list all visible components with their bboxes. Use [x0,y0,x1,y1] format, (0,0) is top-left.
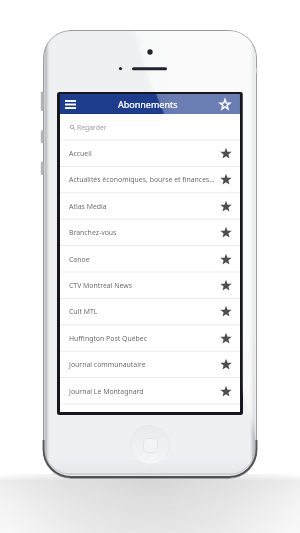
button[interactable]: Actualités économiques, bourse et financ… [60,166,240,192]
staticText: Atlas Media [69,202,216,211]
staticText: Abonnements [118,98,178,110]
staticText: CTV Montreal News [69,281,216,290]
staticText: Regarder [77,123,107,132]
button[interactable]: Accueil [60,140,240,166]
button[interactable]: Canoe [60,246,240,272]
staticText: Journal communautaire [69,360,216,369]
button[interactable]: Regarder [60,114,240,140]
button[interactable]: Atlas Media [60,193,240,219]
staticText: Huffington Post Québec [69,334,216,343]
button[interactable]: Menu [61,94,79,114]
staticText: Branchez-vous [69,228,216,237]
staticText: Accueil [69,149,216,158]
staticText: Actualités économiques, bourse et financ… [69,175,216,184]
button[interactable]: Huffington Post Québec [60,325,240,351]
button[interactable]: Home [130,425,170,465]
button[interactable]: Journal Le Montagnard [60,378,240,404]
staticText: Journal Le Montagnard [69,387,216,396]
button[interactable]: Cult MTL [60,298,240,324]
button[interactable]: Branchez-vous [60,219,240,245]
staticText: Canoe [69,255,216,264]
button[interactable]: CTV Montreal News [60,272,240,298]
button[interactable]: Favorites [216,94,234,114]
staticText: Cult MTL [69,307,216,316]
button[interactable]: Journal communautaire [60,351,240,377]
